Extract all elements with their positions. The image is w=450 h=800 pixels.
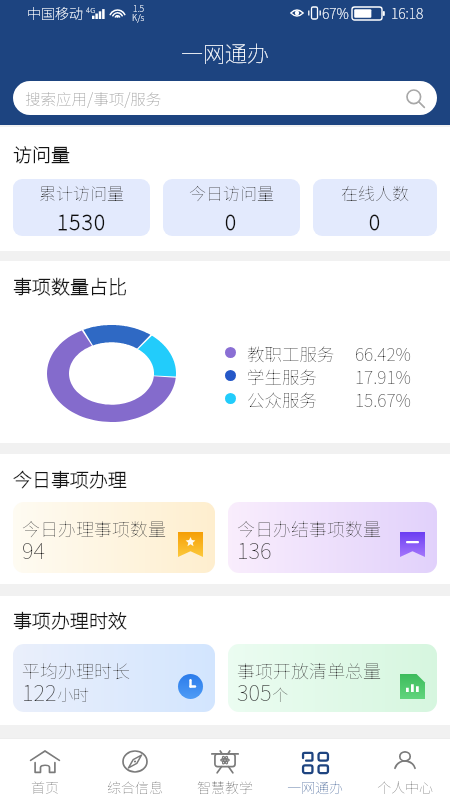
staticText: 事项办理时效 bbox=[13, 606, 128, 634]
staticText: 一网通办 bbox=[287, 777, 343, 797]
other: Search bbox=[405, 88, 425, 108]
staticText: 305 bbox=[237, 675, 272, 707]
staticText: 1530 bbox=[57, 206, 107, 236]
staticText: 综合信息 bbox=[107, 777, 163, 797]
staticText: 122 bbox=[22, 675, 57, 707]
button[interactable]: 个人中心 bbox=[360, 739, 450, 800]
staticText: 136 bbox=[237, 533, 272, 565]
staticText: K/s bbox=[132, 11, 145, 23]
staticText: 小时 bbox=[57, 682, 90, 705]
staticText: 教职工服务 bbox=[247, 341, 335, 364]
staticText: 个 bbox=[272, 682, 289, 705]
staticText: 搜索应用/事项/服务 bbox=[25, 87, 162, 109]
staticText: 67% bbox=[322, 3, 349, 23]
staticText: 学生服务 bbox=[247, 364, 317, 387]
button[interactable]: 智慧教学 bbox=[180, 739, 270, 800]
staticText: 15.67% bbox=[355, 387, 411, 410]
staticText: 中国移动 bbox=[27, 3, 83, 23]
staticText: 一网通办 bbox=[181, 36, 270, 68]
button[interactable]: 首页 bbox=[0, 739, 90, 800]
button[interactable]: 今日办结事项数量 bbox=[228, 502, 437, 573]
staticText: 今日访问量 bbox=[189, 180, 274, 205]
staticText: 个人中心 bbox=[377, 777, 433, 797]
staticText: 事项数量占比 bbox=[13, 272, 128, 300]
button[interactable]: 累计访问量 bbox=[13, 179, 150, 236]
staticText: 智慧教学 bbox=[197, 777, 253, 797]
staticText: 今日办理事项数量 bbox=[22, 515, 166, 541]
staticText: 首页 bbox=[31, 777, 59, 797]
staticText: 公众服务 bbox=[247, 387, 317, 410]
staticText: 4G bbox=[86, 4, 96, 16]
button[interactable]: 今日访问量 bbox=[163, 179, 300, 236]
staticText: 17.91% bbox=[355, 364, 411, 387]
staticText: 66.42% bbox=[355, 341, 411, 364]
button[interactable]: 一网通办 bbox=[270, 739, 360, 800]
staticText: 事项开放清单总量 bbox=[237, 657, 381, 683]
button[interactable]: 搜索应用/事项/服务 bbox=[13, 81, 437, 115]
button[interactable]: 事项开放清单总量 bbox=[228, 644, 437, 712]
staticText: 94 bbox=[22, 533, 45, 565]
staticText: 今日事项办理 bbox=[13, 465, 128, 493]
staticText: 平均办理时长 bbox=[22, 657, 130, 683]
button[interactable]: 平均办理时长 bbox=[13, 644, 215, 712]
staticText: 访问量 bbox=[13, 140, 71, 168]
staticText: 16:18 bbox=[391, 3, 424, 23]
button[interactable]: 在线人数 bbox=[313, 179, 437, 236]
staticText: 在线人数 bbox=[341, 180, 409, 205]
staticText: 0 bbox=[369, 206, 382, 236]
button[interactable]: 综合信息 bbox=[90, 739, 180, 800]
staticText: 0 bbox=[225, 206, 238, 236]
staticText: 1.5 bbox=[133, 2, 144, 14]
staticText: 今日办结事项数量 bbox=[237, 515, 381, 541]
button[interactable]: 今日办理事项数量 bbox=[13, 502, 215, 573]
staticText: 累计访问量 bbox=[39, 180, 124, 205]
